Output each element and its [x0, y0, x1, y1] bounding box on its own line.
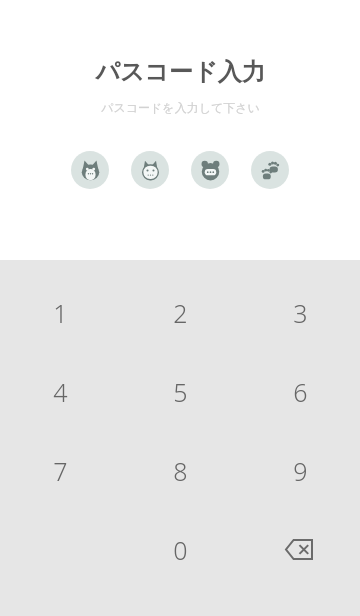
- button[interactable]: 3: [240, 273, 360, 352]
- staticText: 5: [173, 375, 188, 409]
- button[interactable]: 8: [120, 431, 240, 510]
- button[interactable]: 1: [0, 273, 120, 352]
- button[interactable]: 5: [120, 352, 240, 431]
- button[interactable]: Character 2: [131, 151, 169, 189]
- staticText: 9: [293, 454, 308, 488]
- staticText: 7: [53, 454, 68, 488]
- button[interactable]: 9: [240, 431, 360, 510]
- staticText: 4: [53, 375, 68, 409]
- button[interactable]: 7: [0, 431, 120, 510]
- button[interactable]: 6: [240, 352, 360, 431]
- button[interactable]: Paw prints: [251, 151, 289, 189]
- button[interactable]: 4: [0, 352, 120, 431]
- staticText: パスコード入力: [95, 57, 266, 87]
- staticText: 2: [173, 296, 188, 330]
- button[interactable]: 2: [120, 273, 240, 352]
- staticText: 1: [53, 296, 68, 330]
- staticText: 3: [293, 296, 308, 330]
- staticText: 6: [293, 375, 308, 409]
- button[interactable]: 0: [120, 510, 240, 589]
- button[interactable]: Character 1: [71, 151, 109, 189]
- staticText: パスコードを入力して下さい: [101, 100, 260, 115]
- staticText: 0: [173, 533, 188, 567]
- button[interactable]: Backspace: [240, 510, 360, 589]
- staticText: 8: [173, 454, 188, 488]
- button[interactable]: Character 3: [191, 151, 229, 189]
